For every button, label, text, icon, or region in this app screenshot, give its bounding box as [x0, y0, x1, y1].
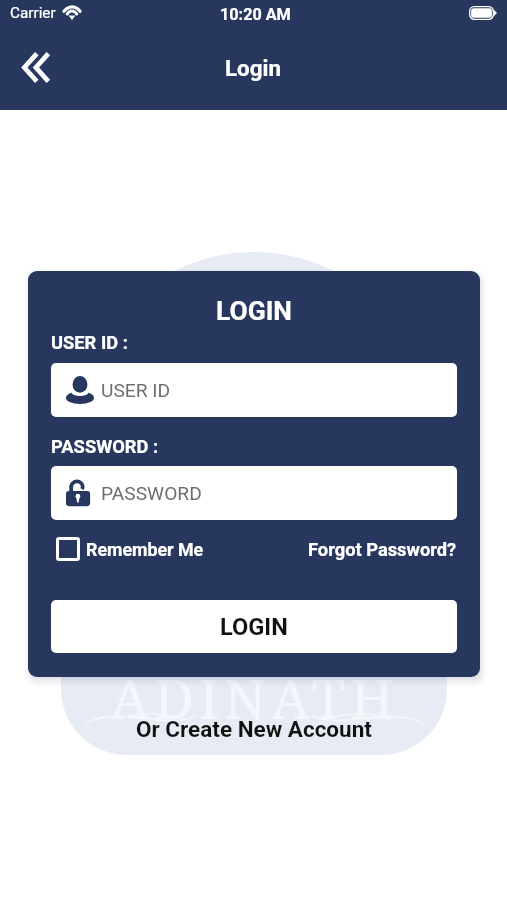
button[interactable]: Or Create New Account [124, 711, 384, 747]
button[interactable]: LOGIN [51, 600, 457, 653]
staticText: USER ID : [51, 332, 128, 353]
staticText: ADINATH [110, 660, 399, 730]
staticText: LOGIN [220, 613, 288, 641]
staticText: Login [225, 55, 282, 81]
staticText: USER ID [101, 379, 171, 402]
staticText: Or Create New Account [136, 716, 372, 742]
staticText: Remember Me [86, 539, 204, 560]
staticText: 10:20 AM [220, 5, 291, 24]
button[interactable]: PASSWORD [51, 466, 457, 520]
staticText: Forgot Password? [308, 539, 457, 560]
staticText: PASSWORD : [51, 436, 159, 457]
button[interactable]: Remember Me [56, 537, 204, 561]
button[interactable]: Forgot Password? [308, 539, 457, 560]
button[interactable]: Back [14, 44, 60, 90]
staticText: LOGIN [216, 296, 292, 327]
button[interactable]: USER ID [51, 363, 457, 417]
staticText: Carrier [10, 4, 56, 22]
staticText: PASSWORD [101, 482, 202, 505]
